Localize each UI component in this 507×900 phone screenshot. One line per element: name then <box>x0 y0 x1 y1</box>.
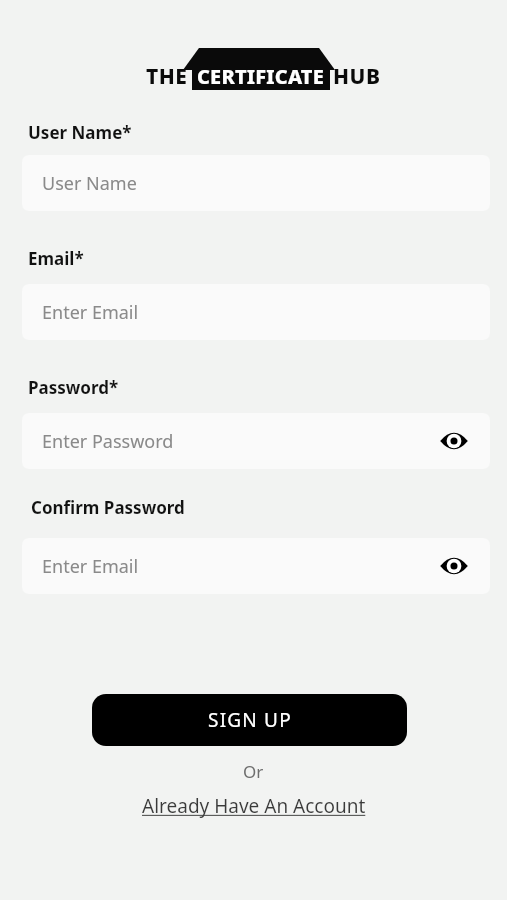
staticText: SIGN UP <box>208 707 292 733</box>
staticText: Password* <box>28 376 119 399</box>
button[interactable]: Show password <box>434 421 474 461</box>
staticText: THE <box>146 62 188 91</box>
staticText: Email* <box>28 247 84 270</box>
button[interactable]: Enter Email <box>22 284 490 340</box>
staticText: Enter Email <box>42 554 139 579</box>
staticText: Or <box>243 760 264 783</box>
staticText: User Name* <box>28 121 132 144</box>
staticText: Already Have An Account <box>142 793 366 819</box>
staticText: CERTIFICATE <box>197 63 325 90</box>
button[interactable]: User Name <box>22 155 490 211</box>
button[interactable]: Enter Password <box>22 413 490 469</box>
staticText: Confirm Password <box>31 496 185 519</box>
staticText: Enter Password <box>42 429 174 454</box>
staticText: User Name <box>42 171 137 196</box>
button[interactable]: SIGN UP <box>92 694 407 746</box>
button[interactable]: Enter Email <box>22 538 490 594</box>
staticText: Enter Email <box>42 300 139 325</box>
button[interactable]: Already Have An Account <box>142 793 366 819</box>
staticText: HUB <box>333 62 381 91</box>
button[interactable]: Show confirm password <box>434 546 474 586</box>
